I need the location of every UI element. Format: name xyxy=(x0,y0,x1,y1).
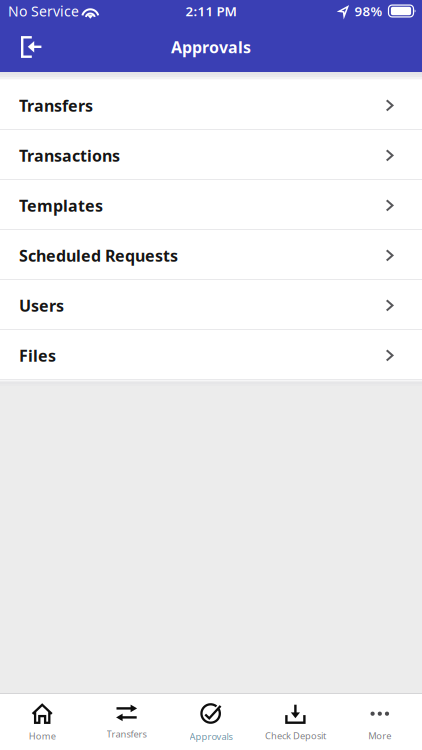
staticText: Approvals xyxy=(189,730,232,743)
button[interactable]: Templates xyxy=(0,180,422,230)
staticText: Transfers xyxy=(107,728,147,740)
button[interactable]: Scheduled Requests xyxy=(0,230,422,280)
button[interactable]: Transfers xyxy=(84,694,169,750)
staticText: Scheduled Requests xyxy=(19,245,178,266)
staticText: Templates xyxy=(19,195,103,216)
button[interactable]: Transfers xyxy=(0,80,422,130)
button[interactable]: Files xyxy=(0,330,422,380)
staticText: Users xyxy=(19,295,64,316)
staticText: Home xyxy=(29,730,56,742)
staticText: Files xyxy=(19,345,56,366)
button[interactable]: Transactions xyxy=(0,130,422,180)
staticText: Check Deposit xyxy=(265,729,326,742)
staticText: No Service xyxy=(8,1,79,21)
staticText: Transfers xyxy=(19,95,93,116)
staticText: Approvals xyxy=(171,36,251,58)
button[interactable]: Users xyxy=(0,280,422,330)
button[interactable]: Home xyxy=(0,694,84,750)
staticText: Transactions xyxy=(19,145,120,166)
button[interactable]: Sign out xyxy=(0,26,60,68)
staticText: More xyxy=(368,729,391,742)
button[interactable]: Check Deposit xyxy=(253,694,338,750)
staticText: 2:11 PM xyxy=(185,2,236,20)
button[interactable]: More xyxy=(338,694,422,750)
button[interactable]: Approvals xyxy=(169,694,253,750)
staticText: 98% xyxy=(354,2,382,20)
